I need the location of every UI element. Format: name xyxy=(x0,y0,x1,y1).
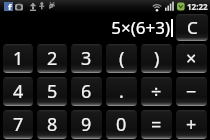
button[interactable]: ) xyxy=(141,44,172,73)
button[interactable]: 3 xyxy=(71,44,102,73)
button[interactable]: C xyxy=(176,14,208,41)
button[interactable]: 0 xyxy=(106,110,137,139)
staticText: = xyxy=(151,112,162,137)
staticText: 7 xyxy=(13,112,24,137)
button[interactable]: 4 xyxy=(3,77,33,106)
staticText: 3 xyxy=(81,46,92,71)
button[interactable]: ( xyxy=(106,44,137,73)
staticText: 2 xyxy=(47,46,58,71)
button[interactable]: 7 xyxy=(3,110,33,139)
button[interactable]: 9 xyxy=(71,110,102,139)
staticText: 5 xyxy=(47,79,58,104)
staticText: ) xyxy=(154,46,160,71)
staticText: ÷ xyxy=(151,79,162,104)
staticText: + xyxy=(186,112,197,137)
staticText: . xyxy=(119,79,124,104)
staticText: 8 xyxy=(47,112,58,137)
staticText: ( xyxy=(119,46,125,71)
staticText: × xyxy=(186,46,197,71)
staticText: 6 xyxy=(81,79,92,104)
button[interactable]: . xyxy=(106,77,137,106)
button[interactable]: ÷ xyxy=(141,77,172,106)
staticText: f xyxy=(8,1,12,10)
button[interactable]: + xyxy=(176,110,207,139)
button[interactable]: 5×(6+3) xyxy=(0,13,176,44)
button[interactable]: = xyxy=(141,110,172,139)
staticText: C xyxy=(187,16,198,39)
button[interactable]: 8 xyxy=(37,110,67,139)
button[interactable]: 2 xyxy=(37,44,67,73)
button[interactable]: − xyxy=(176,77,207,106)
button[interactable]: 1 xyxy=(3,44,33,73)
button[interactable]: 5 xyxy=(37,77,67,106)
button[interactable]: × xyxy=(176,44,207,73)
staticText: 1 xyxy=(13,46,24,71)
staticText: 0 xyxy=(116,112,127,137)
staticText: 5×(6+3) xyxy=(111,16,170,39)
staticText: − xyxy=(186,79,197,104)
button[interactable]: 6 xyxy=(71,77,102,106)
staticText: 12:22 xyxy=(187,1,208,12)
staticText: 4 xyxy=(13,79,24,104)
staticText: 9 xyxy=(81,112,92,137)
